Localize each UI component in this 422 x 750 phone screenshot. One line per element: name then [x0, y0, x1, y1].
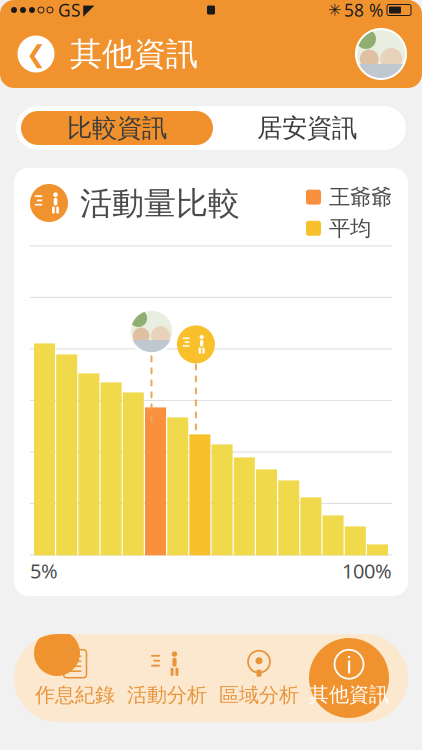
staticText: 5%	[30, 557, 58, 584]
staticText: 100%	[342, 557, 392, 584]
button[interactable]: Profile photo	[354, 27, 408, 81]
staticText: ❮	[26, 40, 46, 68]
staticText: ✳	[328, 1, 341, 19]
button[interactable]: i	[305, 637, 393, 719]
staticText: 居安資訊	[257, 112, 357, 143]
staticText: 區域分析	[219, 683, 299, 707]
button[interactable]: Back	[14, 32, 58, 76]
button[interactable]: 其他資訊	[58, 26, 198, 82]
button[interactable]: 作息紀錄	[29, 637, 121, 719]
staticText: 王爺爺	[329, 184, 392, 210]
button[interactable]: 比較資訊	[21, 111, 213, 145]
staticText: i	[346, 648, 352, 680]
staticText: 活動量比較	[80, 184, 240, 223]
button[interactable]: 居安資訊	[213, 111, 401, 145]
staticText: 58 %	[344, 0, 383, 21]
button[interactable]: 活動分析	[121, 637, 213, 719]
staticText: 其他資訊	[309, 682, 389, 707]
staticText: ◤	[83, 2, 94, 18]
staticText: 活動分析	[127, 683, 207, 707]
staticText: GS	[58, 0, 81, 21]
staticText: 其他資訊	[70, 34, 198, 74]
button[interactable]: 區域分析	[213, 637, 305, 719]
staticText: 平均	[329, 215, 371, 241]
staticText: 比較資訊	[67, 112, 167, 143]
staticText: 作息紀錄	[35, 683, 115, 707]
